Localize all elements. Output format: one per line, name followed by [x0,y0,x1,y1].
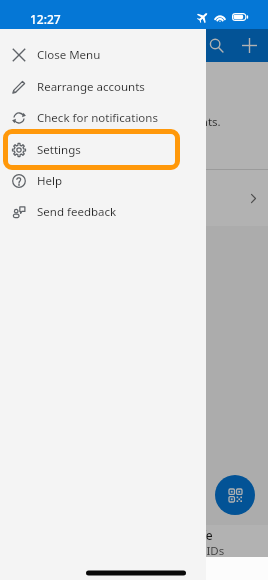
staticText: Close Menu [37,47,101,63]
staticText: Settings [37,142,81,158]
staticText: 12:27 [30,11,61,27]
button[interactable]: Check for notifications [0,102,206,133]
staticText: Send feedback [37,204,117,220]
staticText: Check for notifications [37,110,158,126]
button[interactable]: Scan QR code [215,475,255,515]
button[interactable]: Add account [233,29,266,62]
staticText: Help [37,173,63,189]
button[interactable]: Close Menu [0,39,206,70]
staticText: Rearrange accounts [37,79,145,95]
staticText: Keep your IDs and documents safe [13,527,213,543]
staticText: Add, store and manage your digital IDs [13,543,225,559]
button[interactable]: Search [200,29,233,62]
button[interactable]: Settings [0,134,206,165]
staticText: You have no pending payments. [0,114,268,130]
button[interactable]: Rearrange accounts [0,71,206,102]
button[interactable]: Send feedback [0,196,206,227]
button[interactable]: Manage accounts [0,170,268,226]
button[interactable]: Help [0,165,206,196]
